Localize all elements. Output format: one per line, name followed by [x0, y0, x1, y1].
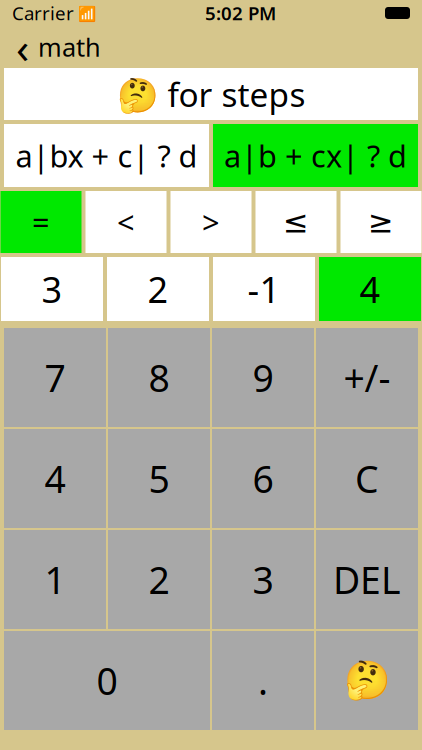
staticText: a|b + cx| ? d	[224, 135, 407, 176]
staticText: 2	[147, 265, 168, 313]
button[interactable]: ≤	[255, 191, 336, 253]
staticText: ≥	[368, 205, 394, 239]
staticText: 5	[148, 454, 169, 503]
button[interactable]: 0	[4, 631, 210, 730]
staticText: 6	[252, 454, 273, 503]
staticText: +/-	[343, 353, 390, 402]
staticText: Carrier	[12, 1, 74, 25]
staticText: .	[258, 656, 268, 705]
button[interactable]: -1	[213, 257, 315, 321]
staticText: 2	[148, 555, 169, 604]
button[interactable]: a|bx + c| ? d	[4, 124, 209, 187]
button[interactable]: 8	[108, 328, 210, 427]
staticText: math	[38, 30, 101, 64]
button[interactable]: 9	[212, 328, 314, 427]
button[interactable]: 4	[4, 429, 106, 528]
button[interactable]: >	[170, 191, 251, 253]
staticText: a|bx + c| ? d	[15, 135, 197, 176]
staticText: 🤔 for steps	[116, 72, 305, 116]
button[interactable]: +/-	[316, 328, 418, 427]
button[interactable]: 6	[212, 429, 314, 528]
button[interactable]: 4	[319, 257, 421, 321]
button[interactable]: 1	[4, 530, 106, 629]
staticText: ≤	[283, 205, 309, 239]
staticText: 🤔	[344, 659, 390, 702]
button[interactable]: Show steps	[316, 631, 418, 730]
button[interactable]: 5	[108, 429, 210, 528]
button[interactable]: ≥	[340, 191, 421, 253]
staticText: 3	[252, 555, 273, 604]
button[interactable]: ‹	[0, 27, 111, 67]
staticText: 5:02 PM	[205, 1, 276, 25]
staticText: <	[117, 202, 135, 242]
staticText: 0	[96, 656, 117, 705]
staticText: DEL	[333, 555, 401, 604]
button[interactable]: =	[0, 191, 81, 253]
staticText: 📶	[74, 3, 96, 23]
staticText: =	[32, 202, 50, 242]
staticText: 1	[44, 555, 65, 604]
button[interactable]: 7	[4, 328, 106, 427]
staticText: 9	[252, 353, 273, 402]
staticText: 7	[44, 353, 65, 402]
staticText: 4	[359, 265, 380, 313]
staticText: >	[202, 202, 220, 242]
staticText: 8	[148, 353, 169, 402]
button[interactable]: 2	[108, 530, 210, 629]
staticText: 4	[44, 454, 65, 503]
button[interactable]: 3	[212, 530, 314, 629]
staticText: C	[355, 454, 379, 503]
staticText: 3	[41, 265, 62, 313]
button[interactable]: <	[85, 191, 166, 253]
staticText: -1	[247, 265, 280, 313]
button[interactable]: .	[212, 631, 314, 730]
button[interactable]: 3	[1, 257, 103, 321]
staticText: ‹	[16, 19, 29, 75]
button[interactable]: a|b + cx| ? d	[213, 124, 418, 187]
button[interactable]: C	[316, 429, 418, 528]
button[interactable]: 🤔 for steps	[4, 68, 418, 120]
button[interactable]: 2	[107, 257, 209, 321]
button[interactable]: DEL	[316, 530, 418, 629]
